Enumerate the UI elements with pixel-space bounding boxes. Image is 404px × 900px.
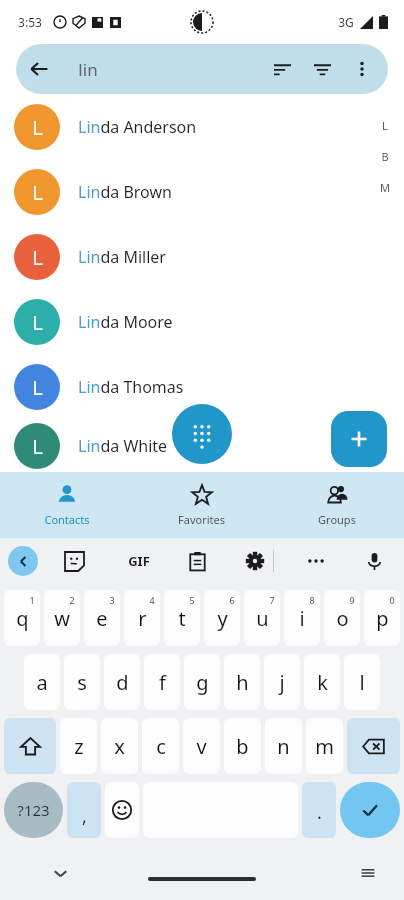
button[interactable]: L: [0, 159, 404, 224]
button[interactable]: L: [0, 354, 404, 419]
button[interactable]: k: [304, 654, 340, 710]
button[interactable]: GIF: [119, 541, 159, 581]
button[interactable]: i: [284, 590, 320, 646]
staticText: r: [138, 605, 147, 632]
button[interactable]: More options: [342, 49, 382, 89]
button[interactable]: Dialpad: [172, 404, 232, 464]
button[interactable]: Shift: [4, 718, 56, 774]
button[interactable]: ,: [67, 782, 101, 838]
button[interactable]: ?123: [4, 782, 63, 838]
button[interactable]: Add contact: [331, 411, 387, 467]
staticText: Linda Miller: [78, 246, 166, 268]
button[interactable]: Favorites: [134, 472, 269, 538]
button[interactable]: L: [0, 289, 404, 354]
staticText: Linda Thomas: [78, 376, 184, 398]
button[interactable]: .: [302, 782, 336, 838]
staticText: Linda White: [78, 435, 168, 457]
staticText: Contacts: [44, 512, 90, 527]
staticText: 2: [69, 594, 75, 606]
button[interactable]: g: [184, 654, 220, 710]
button[interactable]: r: [124, 590, 160, 646]
staticText: j: [279, 669, 285, 696]
staticText: b: [236, 733, 249, 760]
button[interactable]: c: [142, 718, 179, 774]
button[interactable]: q: [4, 590, 40, 646]
staticText: 8: [309, 594, 315, 606]
button[interactable]: x: [101, 718, 138, 774]
button[interactable]: Sort: [262, 49, 302, 89]
button[interactable]: s: [64, 654, 100, 710]
staticText: L: [382, 118, 388, 133]
staticText: v: [196, 733, 207, 760]
button[interactable]: Sticker: [56, 543, 92, 579]
staticText: 5: [189, 594, 195, 606]
button[interactable]: Back: [8, 546, 38, 576]
staticText: i: [299, 605, 305, 632]
button[interactable]: f: [144, 654, 180, 710]
staticText: 3G: [338, 14, 354, 30]
staticText: u: [256, 605, 269, 632]
button[interactable]: n: [265, 718, 302, 774]
button[interactable]: l: [344, 654, 380, 710]
staticText: 0: [389, 594, 395, 606]
button[interactable]: a: [24, 654, 60, 710]
button[interactable]: b: [224, 718, 261, 774]
staticText: 7: [269, 594, 275, 606]
button[interactable]: Filter: [302, 49, 342, 89]
staticText: o: [336, 605, 349, 632]
button[interactable]: p: [364, 590, 400, 646]
staticText: ,: [82, 804, 87, 829]
button[interactable]: Switch keyboard: [354, 859, 382, 887]
staticText: l: [359, 669, 365, 696]
button[interactable]: z: [60, 718, 97, 774]
button[interactable]: L: [0, 94, 404, 159]
staticText: 4: [149, 594, 155, 606]
button[interactable]: j: [264, 654, 300, 710]
staticText: h: [236, 669, 249, 696]
button[interactable]: Clipboard: [179, 543, 215, 579]
button[interactable]: Back: [16, 46, 62, 92]
staticText: Linda Moore: [78, 311, 173, 333]
button[interactable]: L: [0, 419, 404, 472]
staticText: L: [32, 374, 43, 401]
staticText: Linda Anderson: [78, 116, 197, 138]
staticText: m: [315, 733, 334, 760]
staticText: d: [116, 669, 129, 696]
staticText: 1: [29, 594, 35, 606]
button[interactable]: m: [306, 718, 343, 774]
staticText: L: [32, 433, 43, 460]
staticText: Groups: [318, 512, 356, 527]
button[interactable]: Backspace: [347, 718, 400, 774]
button[interactable]: Voice input: [356, 543, 392, 579]
button[interactable]: t: [164, 590, 200, 646]
staticText: 3:53: [18, 14, 42, 30]
button[interactable]: Enter: [340, 782, 400, 838]
staticText: t: [178, 605, 186, 632]
staticText: s: [77, 669, 87, 696]
staticText: Linda Brown: [78, 181, 172, 203]
button[interactable]: Groups: [269, 472, 404, 538]
button[interactable]: v: [183, 718, 220, 774]
button[interactable]: L: [0, 224, 404, 289]
button[interactable]: e: [84, 590, 120, 646]
staticText: w: [54, 605, 70, 632]
staticText: L: [32, 114, 43, 141]
staticText: 9: [349, 594, 355, 606]
staticText: lin: [78, 58, 98, 81]
button[interactable]: Settings: [237, 543, 273, 579]
button[interactable]: y: [204, 590, 240, 646]
button[interactable]: w: [44, 590, 80, 646]
staticText: M: [380, 180, 390, 195]
button[interactable]: o: [324, 590, 360, 646]
button[interactable]: More: [298, 543, 334, 579]
button[interactable]: u: [244, 590, 280, 646]
button[interactable]: d: [104, 654, 140, 710]
staticText: z: [74, 733, 84, 760]
button[interactable]: h: [224, 654, 260, 710]
button[interactable]: Hide keyboard: [45, 858, 75, 888]
button[interactable]: Contacts: [0, 472, 134, 538]
button[interactable]: Emoji: [105, 782, 139, 838]
staticText: L: [32, 244, 43, 271]
staticText: k: [317, 669, 328, 696]
